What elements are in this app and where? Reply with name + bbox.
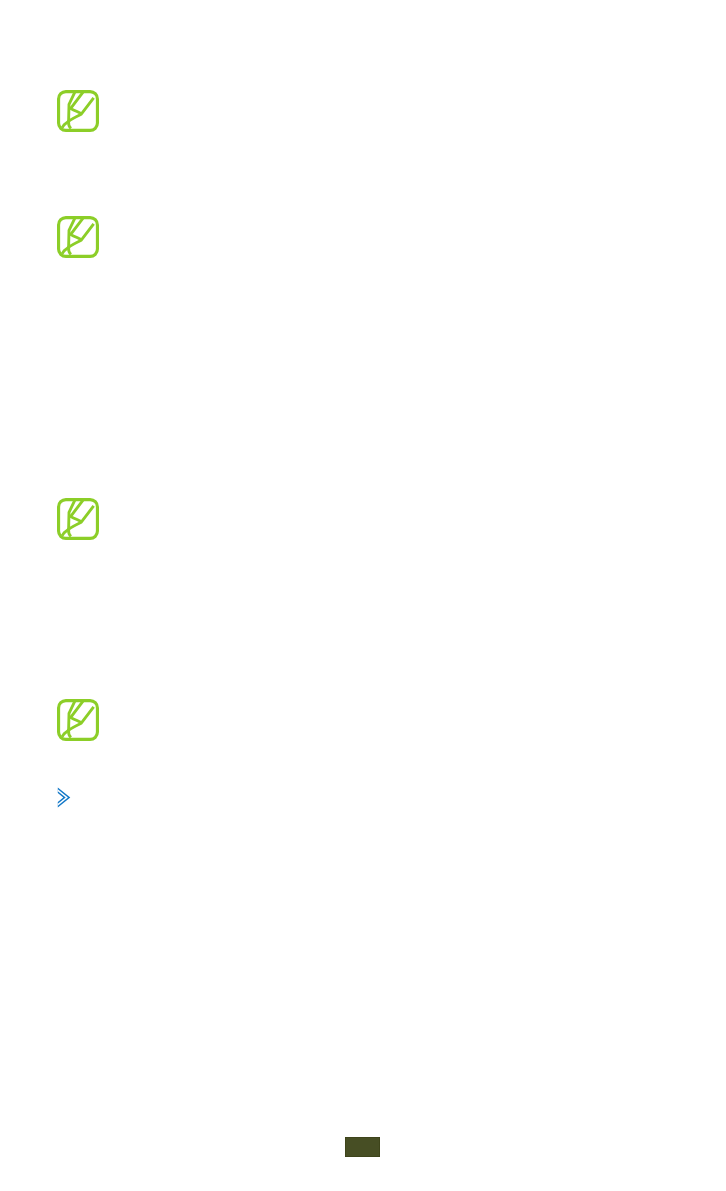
button[interactable]: Page tab <box>345 1137 380 1157</box>
button[interactable]: Memo <box>57 216 99 258</box>
button[interactable]: Memo <box>57 498 99 540</box>
button[interactable]: Memo <box>57 699 99 741</box>
button[interactable]: Memo <box>57 90 99 132</box>
button[interactable]: Show more <box>57 787 71 808</box>
